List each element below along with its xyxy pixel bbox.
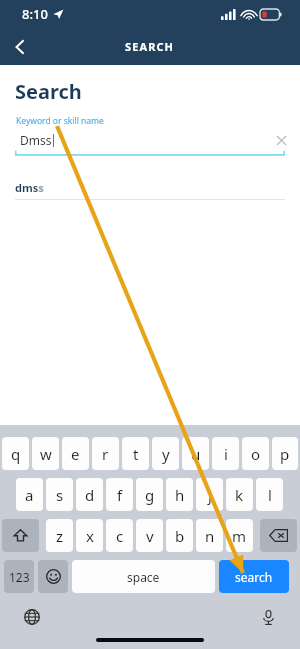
button[interactable]: Voice input <box>256 605 280 629</box>
staticText: s <box>56 485 64 505</box>
staticText: dmss <box>15 180 44 195</box>
staticText: o <box>251 444 261 464</box>
staticText: l <box>268 485 272 505</box>
staticText: Search <box>15 78 82 105</box>
button[interactable]: k <box>226 478 253 511</box>
staticText: r <box>102 444 109 464</box>
staticText: f <box>117 485 123 505</box>
staticText: Dmss <box>20 132 52 148</box>
button[interactable]: c <box>106 519 133 552</box>
staticText: x <box>86 526 94 546</box>
button[interactable]: g <box>136 478 163 511</box>
staticText: v <box>146 526 154 546</box>
button[interactable]: r <box>92 437 119 470</box>
button[interactable]: t <box>122 437 149 470</box>
button[interactable]: v <box>136 519 163 552</box>
button[interactable]: a <box>16 478 43 511</box>
staticText: k <box>235 485 244 505</box>
staticText: w <box>40 444 52 464</box>
staticText: search <box>235 569 273 585</box>
button[interactable]: dmss <box>0 175 300 199</box>
button[interactable]: Back <box>0 28 40 65</box>
staticText: q <box>11 444 21 464</box>
staticText: i <box>224 444 228 464</box>
staticText: 8:10 <box>22 5 48 23</box>
staticText: t <box>133 444 139 464</box>
staticText: j <box>208 485 212 505</box>
button[interactable]: m <box>226 519 253 552</box>
button[interactable]: n <box>196 519 223 552</box>
button[interactable]: b <box>166 519 193 552</box>
button[interactable]: Backspace <box>260 519 297 552</box>
button[interactable]: o <box>242 437 269 470</box>
staticText: a <box>25 485 34 505</box>
staticText: p <box>280 444 290 464</box>
staticText: space <box>127 569 160 585</box>
button[interactable]: Clear text <box>271 130 291 150</box>
button[interactable]: p <box>272 437 298 470</box>
staticText: b <box>175 526 185 546</box>
button[interactable]: q <box>2 437 29 470</box>
button[interactable]: space <box>72 560 215 593</box>
button[interactable]: s <box>46 478 73 511</box>
staticText: n <box>205 526 215 546</box>
button[interactable]: i <box>212 437 239 470</box>
button[interactable]: u <box>182 437 209 470</box>
staticText: 123 <box>9 569 30 585</box>
staticText: e <box>71 444 80 464</box>
staticText: Keyword or skill name <box>16 115 104 127</box>
button[interactable]: l <box>256 478 283 511</box>
button[interactable]: 123 <box>4 560 34 593</box>
button[interactable]: j <box>196 478 223 511</box>
button[interactable]: Emoji <box>38 560 68 593</box>
staticText: SEARCH <box>125 39 175 54</box>
button[interactable]: f <box>106 478 133 511</box>
button[interactable]: Shift <box>2 519 39 552</box>
button[interactable]: Dmss <box>0 129 300 151</box>
button[interactable]: h <box>166 478 193 511</box>
staticText: y <box>162 444 170 464</box>
button[interactable]: Change keyboard language <box>20 605 44 629</box>
staticText: c <box>116 526 124 546</box>
button[interactable]: z <box>46 519 73 552</box>
button[interactable]: e <box>62 437 89 470</box>
button[interactable]: search <box>219 560 289 593</box>
staticText: z <box>56 526 64 546</box>
button[interactable]: w <box>32 437 59 470</box>
staticText: g <box>145 485 155 505</box>
staticText: u <box>191 444 201 464</box>
staticText: h <box>175 485 185 505</box>
button[interactable]: y <box>152 437 179 470</box>
button[interactable]: d <box>76 478 103 511</box>
staticText: m <box>232 526 247 546</box>
button[interactable]: x <box>76 519 103 552</box>
staticText: d <box>85 485 95 505</box>
